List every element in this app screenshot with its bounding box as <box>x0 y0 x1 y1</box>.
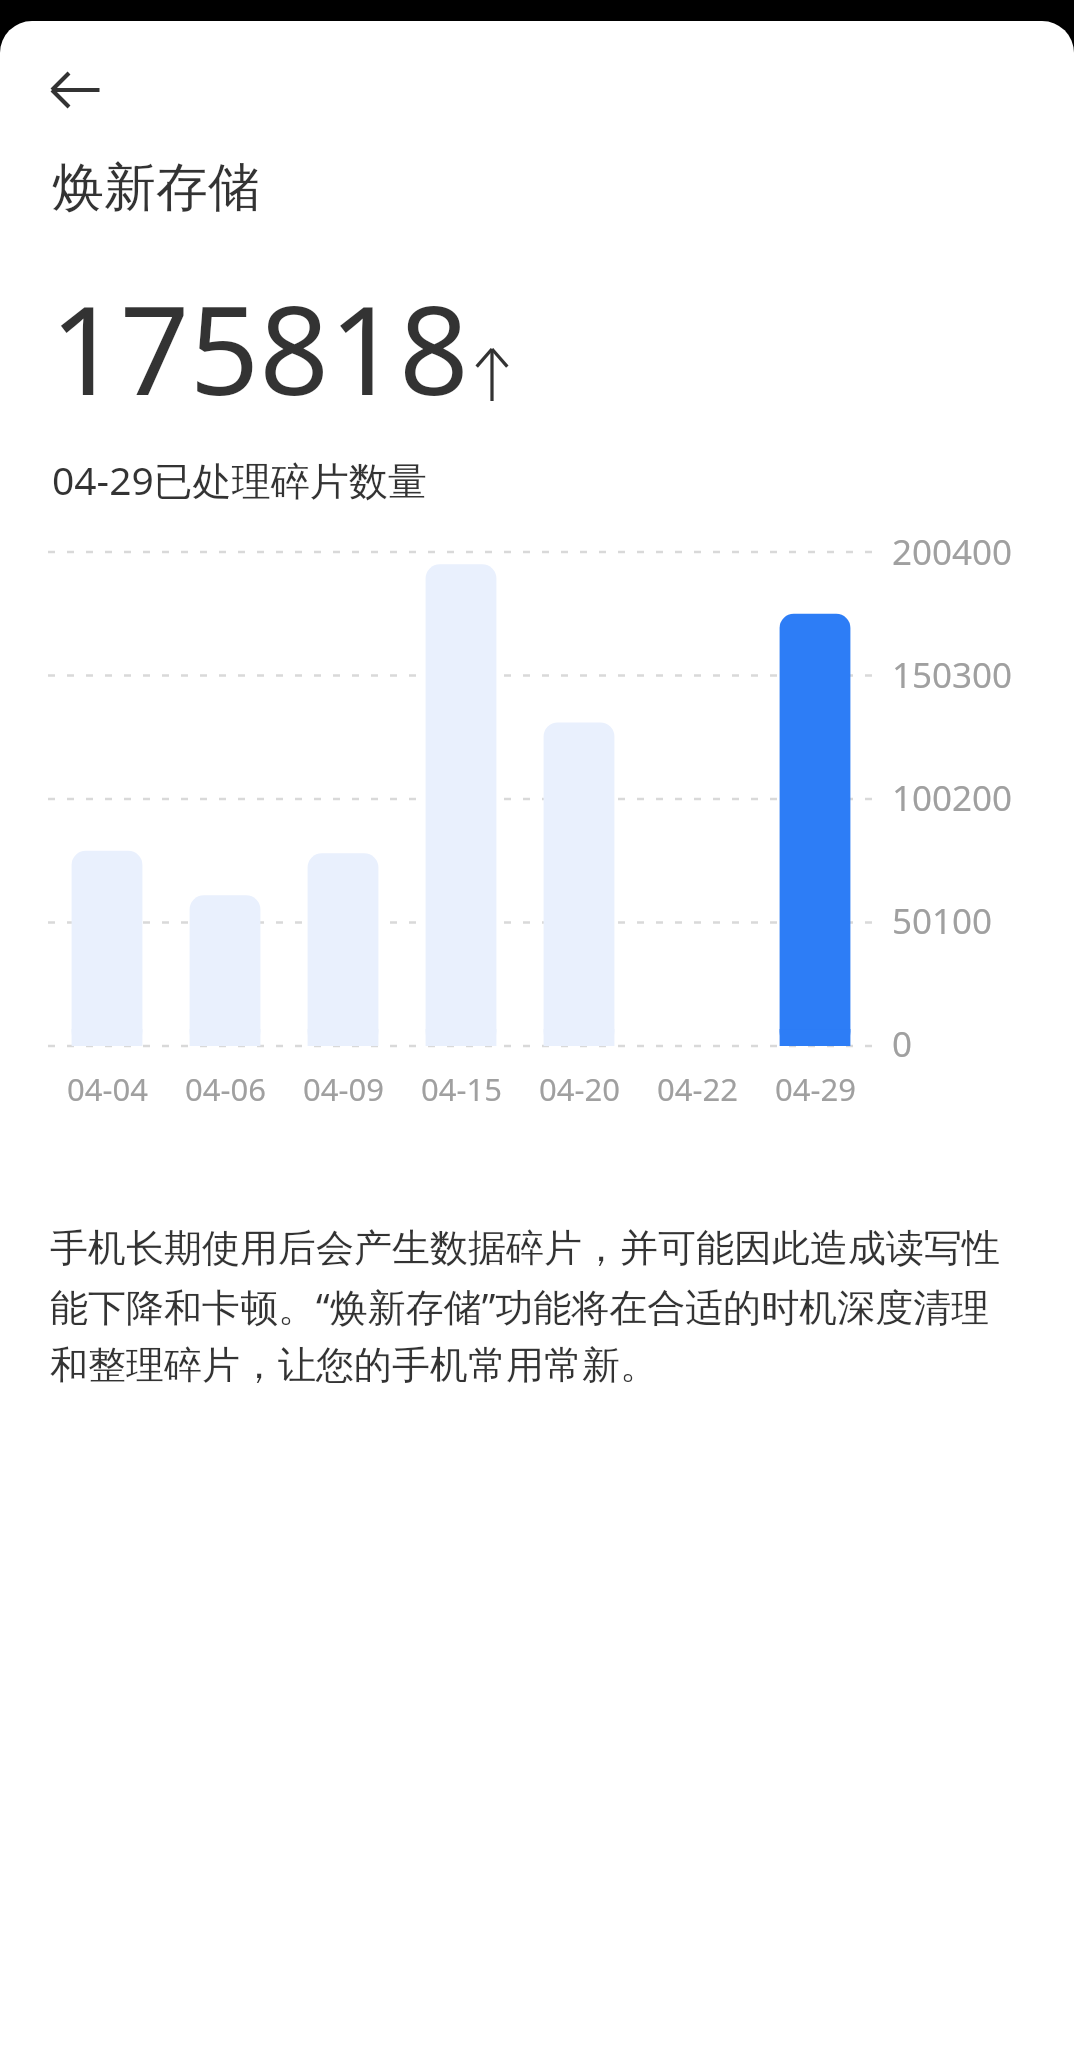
staticText: 50100 <box>892 897 993 945</box>
staticText: 04-04 <box>67 1068 148 1110</box>
staticText: 04-09 <box>303 1068 384 1110</box>
staticText: 175818 <box>50 265 469 431</box>
staticText: 200400 <box>892 528 1013 576</box>
staticText: 04-29已处理碎片数量 <box>52 453 427 506</box>
staticText: 150300 <box>892 651 1013 699</box>
staticText: 手机长期使用后会产生数据碎片，并可能因此造成读写性能下降和卡顿。“焕新存储”功能… <box>50 1224 1024 1390</box>
staticText: 04-22 <box>657 1068 738 1110</box>
staticText: 100200 <box>892 774 1013 822</box>
staticText: 焕新存储 <box>52 155 260 221</box>
staticText: 04-29 <box>775 1068 856 1110</box>
button[interactable]: Back <box>28 43 122 137</box>
staticText: 04-15 <box>421 1068 502 1110</box>
staticText: 0 <box>892 1020 913 1068</box>
staticText: 04-06 <box>185 1068 266 1110</box>
staticText: 04-20 <box>539 1068 620 1110</box>
